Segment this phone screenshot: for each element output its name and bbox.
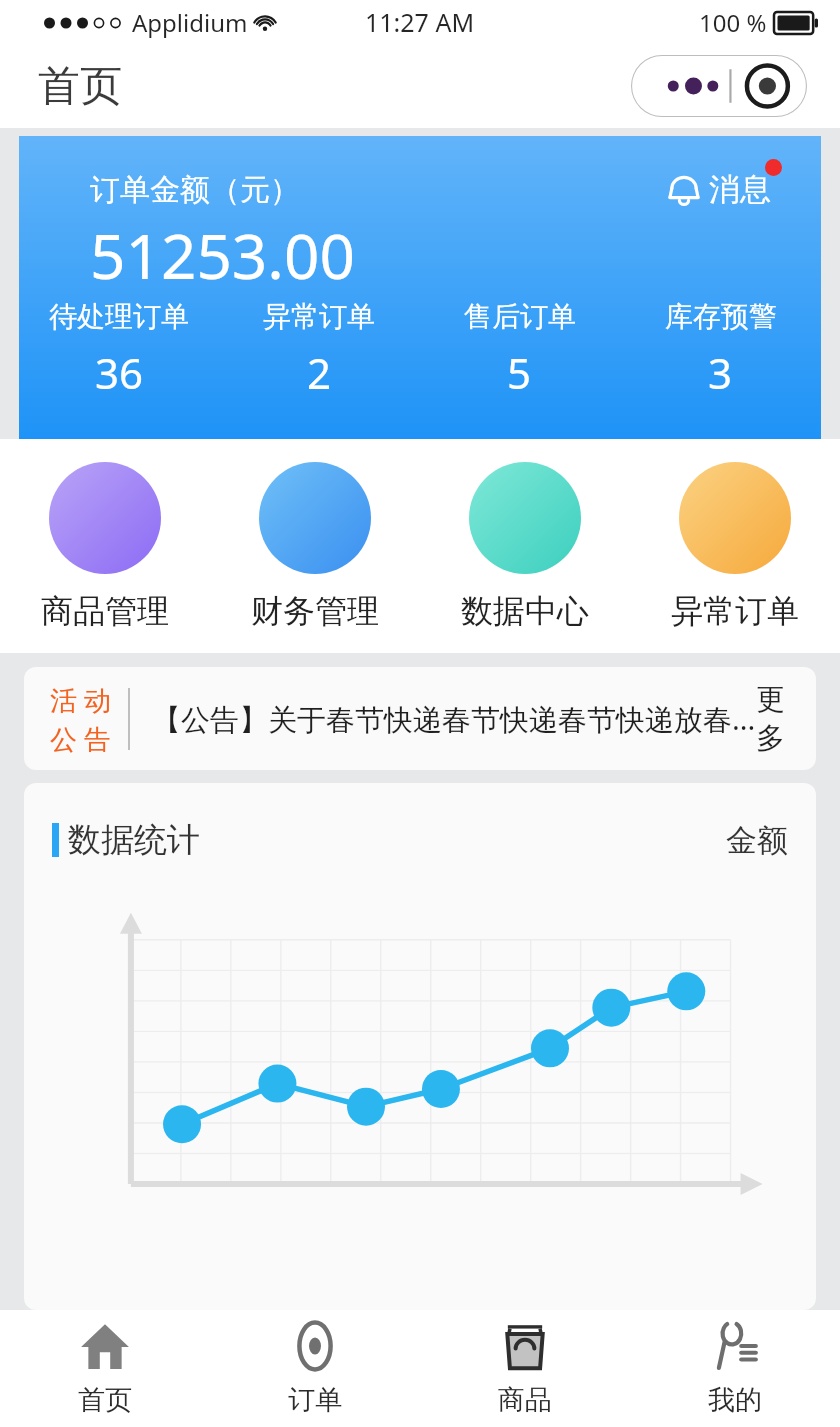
button[interactable]: 金额 xyxy=(726,821,788,860)
staticText: 36 xyxy=(95,344,144,401)
button[interactable]: 商品管理 xyxy=(0,462,210,631)
button[interactable]: 我的 xyxy=(630,1310,840,1427)
staticText: 待处理订单 xyxy=(49,299,189,334)
staticText: 商品 xyxy=(498,1383,552,1417)
staticText: 【公告】关于春节快递春节快递春节快递放春... xyxy=(152,699,756,739)
button[interactable]: 商品 xyxy=(420,1310,630,1427)
button[interactable]: 订单 xyxy=(210,1310,420,1427)
staticText: 3 xyxy=(708,344,733,401)
button[interactable]: 活 动 xyxy=(24,667,816,770)
staticText: 财务管理 xyxy=(251,591,379,631)
staticText: 2 xyxy=(307,344,332,401)
button[interactable]: 财务管理 xyxy=(210,462,420,631)
button[interactable]: 消息 xyxy=(665,170,771,209)
staticText: 51253.00 xyxy=(90,213,355,297)
staticText: 订单金额（元） xyxy=(90,171,300,209)
button[interactable]: 订单金额（元） xyxy=(19,136,821,439)
staticText: Applidium xyxy=(132,6,248,39)
staticText: 消息 xyxy=(709,170,771,209)
staticText: 数据统计 xyxy=(68,819,200,861)
staticText: 售后订单 xyxy=(464,299,576,334)
staticText: 活 动 xyxy=(50,681,112,718)
staticText: 公 告 xyxy=(50,720,112,757)
staticText: 订单 xyxy=(288,1383,342,1417)
staticText: 库存预警 xyxy=(665,299,777,334)
button[interactable]: 异常订单 xyxy=(630,462,840,631)
staticText: 商品管理 xyxy=(41,591,169,631)
button[interactable]: 售后订单 xyxy=(419,299,620,401)
staticText: 数据中心 xyxy=(461,591,589,631)
staticText: 5 xyxy=(507,344,532,401)
staticText: 首页 xyxy=(78,1383,132,1417)
staticText: 我的 xyxy=(708,1383,762,1417)
staticText: 异常订单 xyxy=(671,591,799,631)
button[interactable]: 异常订单 xyxy=(219,299,419,401)
button[interactable]: 更多 xyxy=(756,681,816,757)
staticText: 异常订单 xyxy=(263,299,375,334)
button[interactable]: 库存预警 xyxy=(620,299,821,401)
staticText: 100 % xyxy=(699,6,767,39)
button[interactable]: 首页 xyxy=(0,1310,210,1427)
button[interactable]: 数据中心 xyxy=(420,462,630,631)
button[interactable]: Menu and capsule xyxy=(631,55,807,117)
staticText: 11:27 AM xyxy=(365,5,475,39)
staticText: 首页 xyxy=(38,60,122,113)
button[interactable]: 待处理订单 xyxy=(19,299,219,401)
